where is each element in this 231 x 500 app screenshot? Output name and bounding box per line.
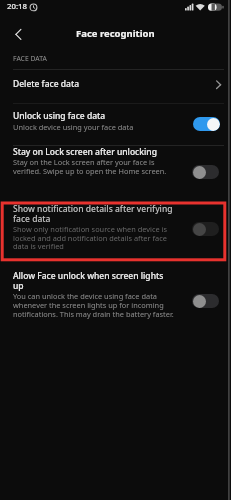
staticText: notifications. This may drain the batter…	[13, 309, 174, 319]
staticText: Stay on the Lock screen after your face …	[13, 157, 155, 167]
staticText: Unlock using face data	[13, 110, 106, 122]
staticText: Show notification details after verifyin…	[13, 203, 173, 215]
button[interactable]: Unlock using face data	[0, 103, 231, 145]
button[interactable]	[192, 294, 219, 308]
staticText: 20:18	[7, 1, 27, 12]
button[interactable]: Allow Face unlock when screen lights	[0, 266, 231, 330]
button[interactable]: Show notification details after verifyin…	[0, 196, 231, 266]
staticText: Delete face data	[13, 78, 80, 90]
button[interactable]	[192, 222, 219, 236]
staticText: face data	[13, 213, 51, 225]
staticText: Face recognition	[76, 27, 155, 40]
staticText: whenever the screen lights up for incomi…	[13, 300, 164, 310]
button[interactable]	[193, 117, 220, 131]
staticText: locked and add notification details afte…	[13, 233, 167, 243]
staticText: Show only notification source when devic…	[13, 224, 168, 234]
staticText: You can unlock the device using face dat…	[13, 291, 157, 301]
button[interactable]: Stay on Lock screen after unlocking	[0, 145, 231, 190]
button[interactable]	[8, 24, 30, 45]
staticText: Unlock device using your face data	[13, 122, 134, 132]
staticText: FACE DATA	[13, 54, 47, 63]
staticText: up	[13, 280, 24, 292]
staticText: Stay on Lock screen after unlocking	[13, 146, 157, 158]
staticText: Allow Face unlock when screen lights	[13, 270, 164, 282]
button[interactable]: Delete face data	[0, 70, 231, 102]
staticText: data is verified	[13, 241, 64, 251]
button[interactable]	[192, 165, 219, 179]
staticText: verified. Swipe up to open the Home scre…	[13, 166, 167, 176]
